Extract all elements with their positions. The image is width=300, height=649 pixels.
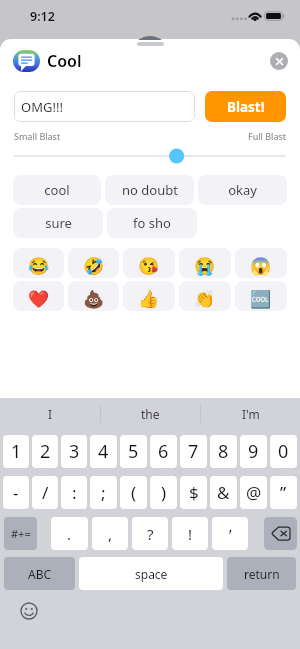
staticText: 2 [40,439,51,464]
staticText: : [72,481,77,504]
staticText: 0 [278,439,289,464]
button[interactable]: : [61,476,87,509]
staticText: 3 [69,439,80,464]
button[interactable]: I'm [201,398,300,429]
button[interactable]: ” [270,476,297,509]
button[interactable]: 4 [90,435,117,468]
button[interactable]: - [3,476,29,509]
button[interactable]: ( [120,476,147,509]
staticText: 😂 [28,256,50,276]
staticText: 😱 [250,256,272,276]
button[interactable]: 0 [270,435,297,468]
button[interactable]: ’ [212,517,248,550]
staticText: Cool [47,50,82,72]
staticText: 👍 [138,289,160,309]
staticText: ; [101,481,106,504]
button[interactable]: return [227,557,296,590]
staticText: OMG!!! [21,98,63,116]
staticText: / [42,481,49,504]
button[interactable]: Emoji keyboard [20,602,38,620]
staticText: ( [131,481,137,504]
button[interactable]: 9 [240,435,267,468]
button[interactable]: Backspace [264,517,297,550]
button[interactable]: #+= [4,517,37,550]
button[interactable]: / [32,476,58,509]
staticText: I'm [242,406,260,422]
staticText: 🤣 [83,256,105,276]
button[interactable]: okay [198,175,287,205]
staticText: . [67,524,72,544]
button[interactable]: 6 [150,435,177,468]
staticText: ❤️ [28,289,50,309]
staticText: & [217,481,230,504]
staticText: Blast! [227,98,265,116]
button[interactable]: ? [132,517,168,550]
button[interactable]: Emoji [179,248,231,278]
staticText: 9 [248,439,259,464]
button[interactable]: Emoji [235,281,287,311]
staticText: $ [189,481,199,504]
button[interactable]: Emoji [68,248,119,278]
staticText: 6 [158,439,169,464]
button[interactable]: sure [13,208,103,238]
staticText: 👏 [194,289,216,309]
staticText: sure [45,214,72,232]
button[interactable]: ABC [4,557,75,590]
button[interactable]: Emoji [179,281,231,311]
button[interactable]: Emoji [13,248,64,278]
staticText: okay [228,181,257,199]
button[interactable]: Blast! [205,91,286,122]
button[interactable]: Emoji [235,248,287,278]
button[interactable]: ) [150,476,177,509]
button[interactable]: 7 [180,435,207,468]
staticText: 💩 [83,289,105,309]
staticText: ) [161,481,167,504]
button[interactable]: 5 [120,435,147,468]
staticText: 1 [11,439,22,464]
staticText: fo sho [133,214,171,232]
staticText: no doubt [122,181,178,199]
staticText: 7 [188,439,199,464]
button[interactable]: fo sho [107,208,197,238]
staticText: space [135,566,168,582]
button[interactable]: 1 [3,435,29,468]
staticText: Small Blast [14,130,61,142]
button[interactable]: Close [270,52,288,70]
button[interactable]: Emoji [123,281,175,311]
staticText: ’ [229,524,232,544]
button[interactable]: no doubt [105,175,194,205]
button[interactable] [14,148,286,164]
staticText: 🆒 [250,289,272,309]
button[interactable]: cool [13,175,101,205]
staticText: 😘 [138,256,160,276]
staticText: Full Blast [248,130,286,142]
button[interactable]: ; [90,476,117,509]
button[interactable]: OMG!!! [14,91,195,122]
button[interactable]: 2 [32,435,58,468]
button[interactable]: $ [180,476,207,509]
staticText: cool [44,181,70,199]
staticText: return [244,566,280,582]
button[interactable]: Emoji [13,281,64,311]
button[interactable]: I [0,398,100,429]
button[interactable]: 3 [61,435,87,468]
button[interactable]: 8 [210,435,237,468]
staticText: ? [147,524,154,544]
button[interactable]: Emoji [68,281,119,311]
button[interactable]: ! [172,517,208,550]
staticText: @ [246,481,262,504]
staticText: 9:12 [30,8,55,25]
button[interactable]: @ [240,476,267,509]
staticText: the [141,406,160,422]
button[interactable]: Emoji [123,248,175,278]
staticText: 5 [128,439,139,464]
button[interactable]: & [210,476,237,509]
staticText: I [48,406,53,422]
button[interactable]: space [79,557,223,590]
button[interactable]: . [51,517,88,550]
button[interactable]: the [101,398,200,429]
staticText: - [13,481,19,504]
staticText: , [108,524,113,544]
staticText: #+= [11,526,31,541]
button[interactable]: , [92,517,128,550]
